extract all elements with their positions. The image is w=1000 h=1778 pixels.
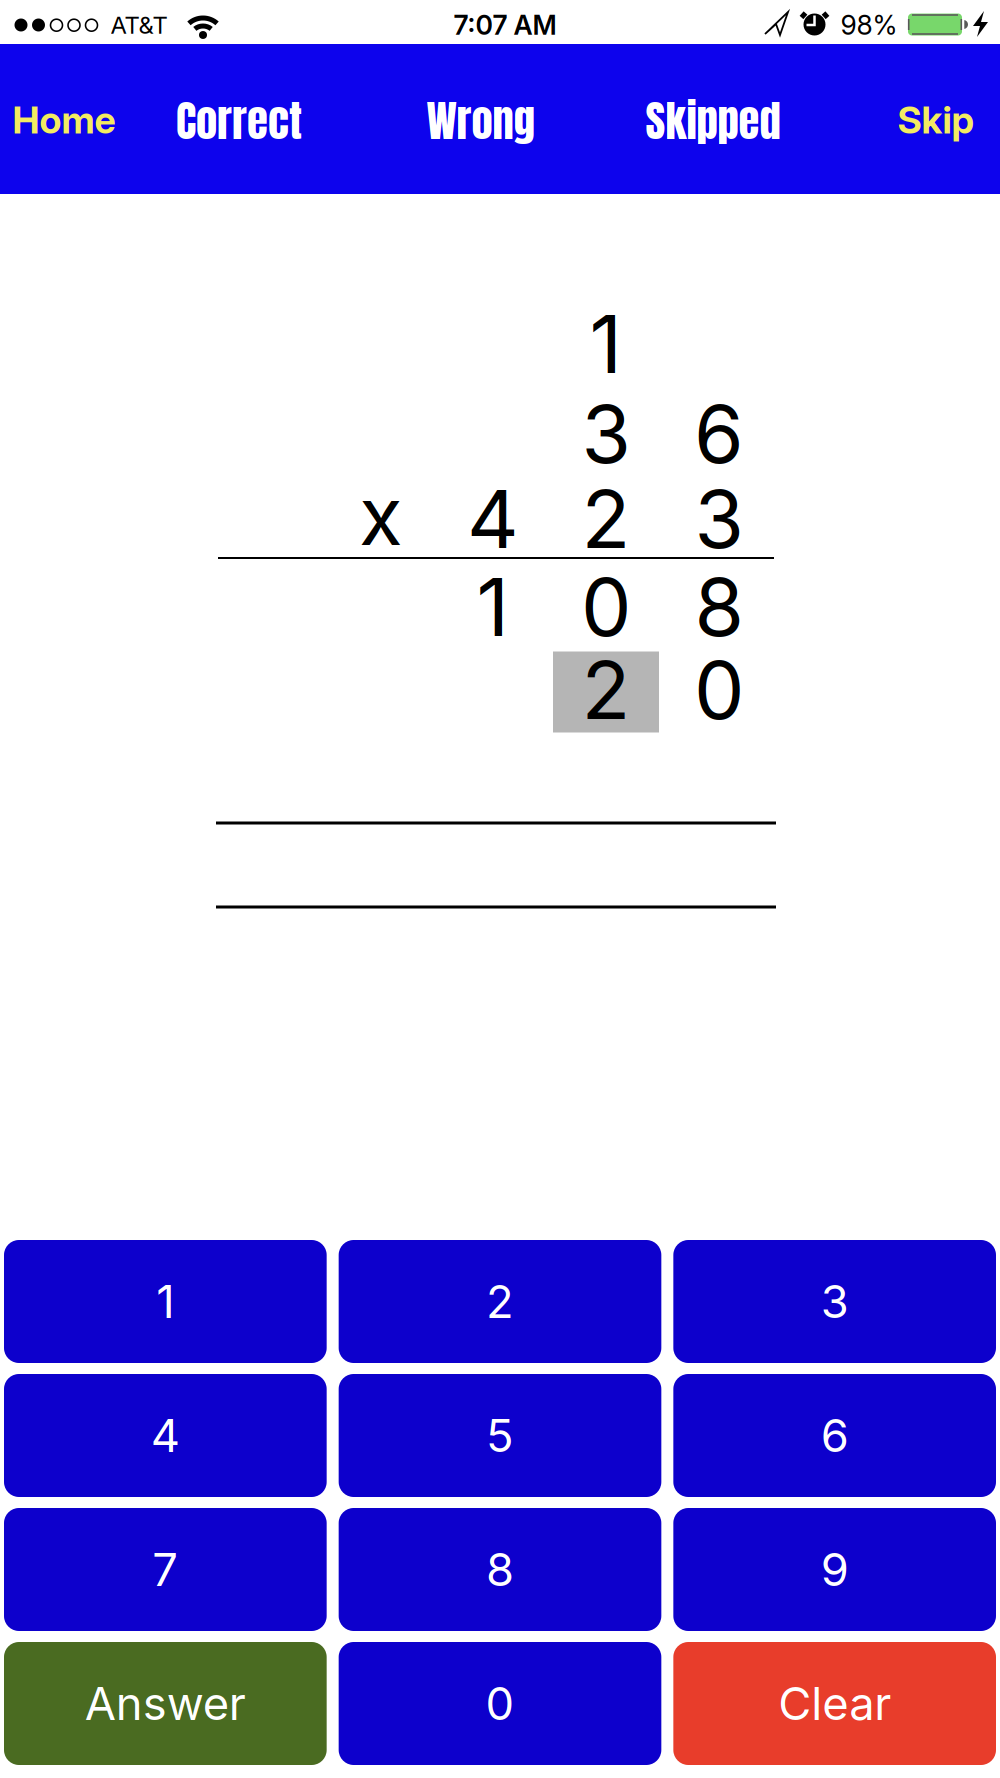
button[interactable]: 4	[4, 1374, 327, 1497]
staticText: 8	[694, 560, 743, 654]
button[interactable]: 5	[339, 1374, 661, 1497]
staticText: 2	[581, 643, 630, 737]
staticText: 1	[589, 297, 622, 391]
button[interactable]: 8	[339, 1508, 661, 1631]
button[interactable]: Wrong	[426, 89, 535, 153]
staticText: 0	[694, 643, 744, 737]
staticText: Home	[12, 98, 115, 142]
staticText: 7:07 AM	[453, 9, 556, 41]
staticText: Clear	[778, 1677, 891, 1730]
button[interactable]: Correct	[176, 89, 302, 153]
button[interactable]: Clear	[673, 1642, 996, 1765]
staticText: 7	[152, 1543, 178, 1596]
staticText: 3	[694, 472, 743, 566]
staticText: 1	[476, 560, 509, 654]
staticText: 0	[485, 1677, 514, 1730]
button[interactable]: 3	[673, 1240, 996, 1363]
button[interactable]: 7	[4, 1508, 327, 1631]
button[interactable]: 9	[673, 1508, 996, 1631]
staticText: 8	[486, 1543, 514, 1596]
staticText: 6	[821, 1409, 849, 1462]
staticText: Skip	[897, 98, 974, 142]
staticText: 6	[694, 387, 744, 481]
staticText: 0	[581, 560, 631, 654]
button[interactable]: Answer	[4, 1642, 327, 1765]
button[interactable]: 1	[4, 1240, 327, 1363]
staticText: x	[359, 469, 403, 563]
button[interactable]: 0	[339, 1642, 661, 1765]
staticText: Skipped	[645, 89, 780, 153]
staticText: Wrong	[426, 89, 535, 153]
staticText: 2	[581, 472, 630, 566]
staticText: Correct	[176, 89, 302, 153]
button[interactable]: 6	[673, 1374, 996, 1497]
staticText: 1	[156, 1275, 174, 1328]
staticText: 3	[821, 1275, 849, 1328]
button[interactable]: Home	[12, 98, 115, 142]
staticText: Answer	[85, 1677, 246, 1730]
staticText: 4	[467, 472, 519, 566]
button[interactable]: Skip	[897, 98, 974, 142]
staticText: 98%	[840, 9, 897, 41]
button[interactable]: Skipped	[645, 89, 780, 153]
staticText: 5	[486, 1409, 514, 1462]
button[interactable]: 2	[339, 1240, 661, 1363]
staticText: 4	[151, 1409, 180, 1462]
staticText: 9	[821, 1543, 849, 1596]
staticText: AT&T	[110, 11, 167, 39]
staticText: 2	[486, 1275, 514, 1328]
staticText: 3	[581, 387, 630, 481]
